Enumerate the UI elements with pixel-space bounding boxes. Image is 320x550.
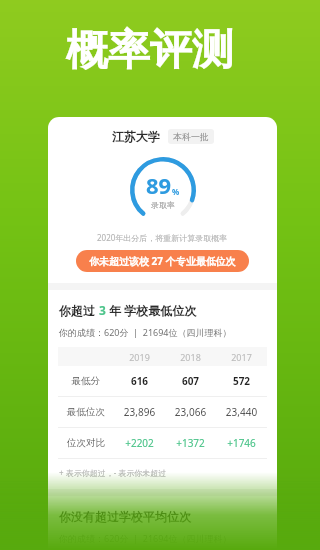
staticText: 23,066 xyxy=(165,405,216,419)
staticText: 你的成绩：620分 | 21694位（四川理科） xyxy=(59,326,232,338)
staticText: +1746 xyxy=(216,436,267,450)
staticText: 23,440 xyxy=(216,405,267,419)
staticText: 2018 xyxy=(165,351,216,363)
staticText: 23,896 xyxy=(114,405,165,419)
staticText: 最低位次 xyxy=(58,406,114,418)
staticText: 616 xyxy=(114,374,165,388)
staticText: % xyxy=(172,186,180,197)
staticText: +2202 xyxy=(114,436,165,450)
staticText: 你未超过该校 27 个专业最低位次 xyxy=(89,254,236,268)
staticText: +1372 xyxy=(165,436,216,450)
staticText: 3 xyxy=(99,302,106,318)
staticText: 年 学校最低位次 xyxy=(106,302,197,318)
staticText: 2019 xyxy=(114,351,165,363)
staticText: 607 xyxy=(165,374,216,388)
staticText: 你超过 xyxy=(59,302,99,318)
staticText: 最低分 xyxy=(58,375,114,387)
staticText: 89 xyxy=(146,170,172,200)
staticText: 本科一批 xyxy=(173,131,209,142)
staticText: 江苏大学 xyxy=(112,129,160,144)
staticText: 录取率 xyxy=(151,200,175,210)
staticText: 你的成绩：620分 | 21694位（四川理科） xyxy=(59,532,232,544)
staticText: 位次对比 xyxy=(58,437,114,449)
staticText: 2020年出分后，将重新计算录取概率 xyxy=(97,232,228,243)
button[interactable]: 你未超过该校 27 个专业最低位次 xyxy=(76,250,249,272)
staticText: 2017 xyxy=(216,351,267,363)
staticText: + 表示你超过，- 表示你未超过 xyxy=(59,467,167,478)
staticText: 572 xyxy=(216,374,267,388)
staticText: 你没有超过学校平均位次 xyxy=(59,509,191,524)
staticText: 概率评测 xyxy=(66,24,234,77)
